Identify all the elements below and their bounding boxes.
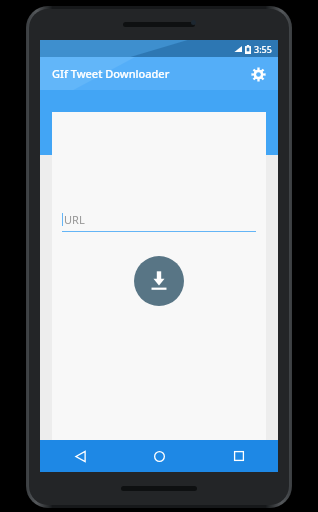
staticText: URL [64,212,85,227]
button[interactable]: Recent apps [199,440,278,472]
staticText: GIf Tweet Downloader [52,66,170,81]
button[interactable]: Download [134,256,184,306]
button[interactable]: Settings [244,60,272,88]
button[interactable]: URL [62,206,256,232]
button[interactable]: Home [120,440,199,472]
button[interactable]: Back [40,440,120,472]
staticText: 3:55 [254,43,272,55]
